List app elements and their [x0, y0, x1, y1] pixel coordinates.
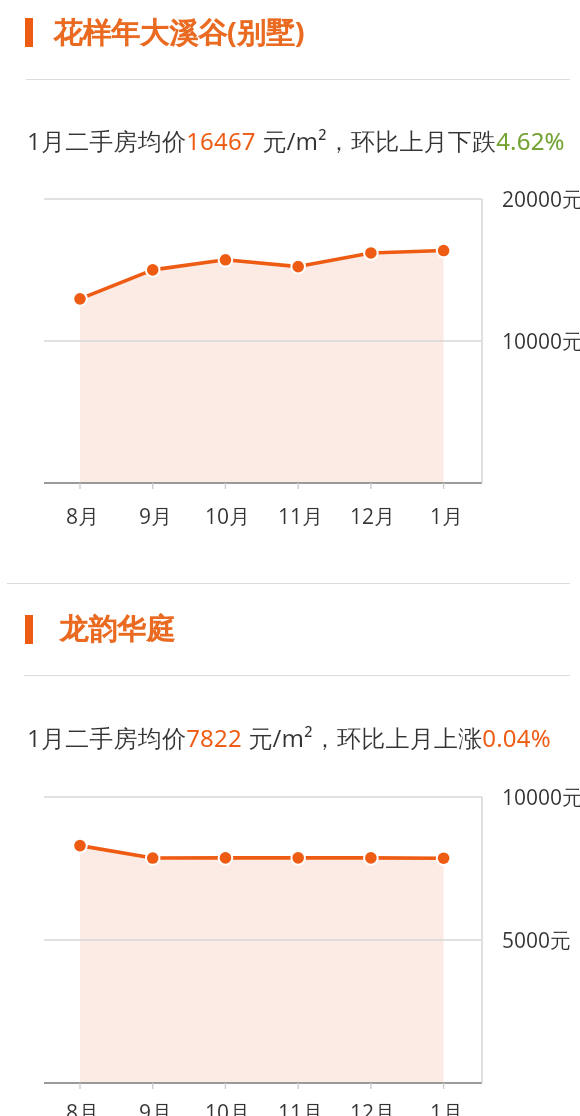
staticText: 8月 [66, 1098, 100, 1116]
button[interactable]: 龙韵华庭 [0, 583, 580, 675]
staticText: 11月 [278, 1098, 324, 1116]
staticText: 11月 [278, 502, 324, 531]
staticText: 花样年大溪谷(别墅) [53, 12, 305, 52]
staticText: 12月 [350, 502, 396, 531]
staticText: 12月 [350, 1098, 396, 1116]
staticText: 1月二手房均价16467 元/m²，环比上月下跌4.62% [27, 124, 565, 157]
staticText: 5000元 [502, 926, 572, 955]
staticText: 10000元 [502, 327, 580, 356]
button[interactable]: 房价走势图 [44, 183, 488, 499]
staticText: 20000元 [502, 185, 580, 214]
staticText: 9月 [139, 1098, 173, 1116]
staticText: 8月 [66, 502, 100, 531]
button[interactable]: 花样年大溪谷(别墅) [0, 0, 580, 79]
staticText: 9月 [139, 502, 173, 531]
staticText: 1月 [430, 502, 464, 531]
staticText: 龙韵华庭 [59, 611, 175, 648]
staticText: 10000元 [502, 783, 580, 812]
staticText: 1月二手房均价7822 元/m²，环比上月上涨0.04% [27, 721, 551, 754]
staticText: 1月 [430, 1098, 464, 1116]
staticText: 10月 [205, 1098, 251, 1116]
button[interactable]: 房价走势图 [44, 781, 488, 1099]
staticText: 10月 [205, 502, 251, 531]
